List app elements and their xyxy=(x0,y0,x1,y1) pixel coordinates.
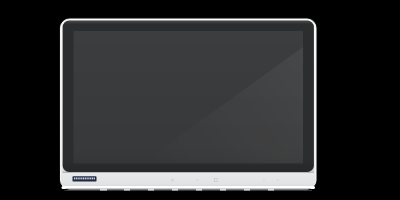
button[interactable]: Advantech medical panel PC monitor xyxy=(0,0,400,200)
